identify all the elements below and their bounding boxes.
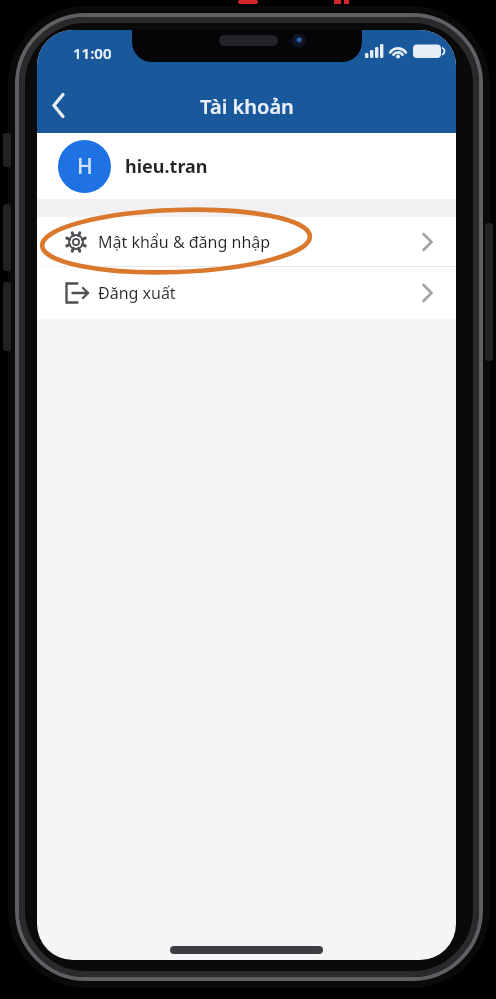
staticText: Đăng xuất [98, 282, 176, 304]
staticText: Tài khoản [200, 93, 294, 120]
staticText: hieu.tran [125, 154, 208, 179]
button[interactable] [41, 88, 77, 124]
button[interactable]: Mật khẩu & đăng nhập [37, 217, 456, 266]
button[interactable]: Đăng xuất [37, 267, 456, 319]
staticText: 11:00 [73, 43, 112, 63]
staticText: Mật khẩu & đăng nhập [98, 231, 271, 253]
button[interactable]: H [37, 133, 456, 199]
staticText: H [77, 152, 93, 181]
